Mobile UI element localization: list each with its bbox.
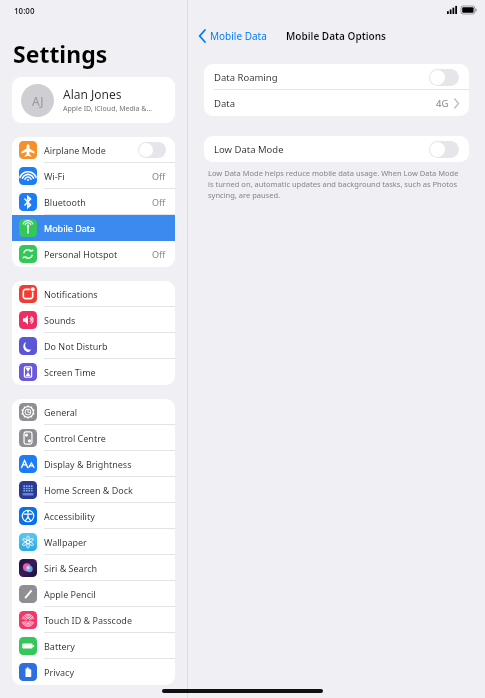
staticText: Notifications bbox=[44, 288, 98, 300]
button[interactable]: Data Roaming bbox=[204, 64, 469, 90]
staticText: Battery bbox=[44, 640, 75, 652]
staticText: General bbox=[44, 406, 78, 418]
staticText: Wi-Fi bbox=[44, 170, 65, 182]
button[interactable]: Notifications bbox=[12, 281, 175, 307]
staticText: Off bbox=[152, 248, 166, 260]
staticText: Alan Jones bbox=[63, 86, 122, 102]
staticText: Display & Brightness bbox=[44, 458, 132, 470]
staticText: Sounds bbox=[44, 314, 76, 326]
button[interactable]: Sounds bbox=[12, 307, 175, 333]
staticText: Low Data Mode bbox=[214, 143, 284, 156]
button[interactable]: Control Centre bbox=[12, 425, 175, 451]
staticText: Bluetooth bbox=[44, 196, 86, 208]
button[interactable]: Wallpaper bbox=[12, 529, 175, 555]
staticText: 4G bbox=[436, 97, 449, 110]
button[interactable]: Bluetooth bbox=[12, 189, 175, 215]
button[interactable]: Home Screen & Dock bbox=[12, 477, 175, 503]
staticText: Data bbox=[214, 97, 236, 110]
staticText: Low Data Mode helps reduce mobile data u… bbox=[208, 168, 465, 200]
staticText: Apple Pencil bbox=[44, 588, 96, 600]
button[interactable]: Airplane Mode bbox=[12, 137, 175, 163]
staticText: Wallpaper bbox=[44, 536, 87, 548]
button[interactable]: Screen Time bbox=[12, 359, 175, 385]
staticText: Data Roaming bbox=[214, 71, 278, 84]
staticText: Apple ID, iCloud, Media &… bbox=[63, 104, 152, 114]
button[interactable]: Wi-Fi bbox=[12, 163, 175, 189]
button[interactable]: Mobile Data bbox=[199, 29, 267, 43]
staticText: Accessibility bbox=[44, 510, 95, 522]
staticText: Home Screen & Dock bbox=[44, 484, 133, 496]
button[interactable]: Accessibility bbox=[12, 503, 175, 529]
staticText: Control Centre bbox=[44, 432, 106, 444]
button[interactable]: Toggle off bbox=[138, 142, 166, 158]
staticText: Screen Time bbox=[44, 366, 96, 378]
button[interactable]: General bbox=[12, 399, 175, 425]
staticText: Off bbox=[152, 170, 166, 182]
button[interactable]: Siri & Search bbox=[12, 555, 175, 581]
staticText: Privacy bbox=[44, 666, 75, 678]
staticText: AJ bbox=[32, 93, 44, 109]
staticText: Airplane Mode bbox=[44, 144, 106, 156]
staticText: Off bbox=[152, 196, 166, 208]
staticText: Mobile Data Options bbox=[286, 29, 387, 43]
button[interactable]: AJ bbox=[12, 77, 175, 123]
button[interactable]: Privacy bbox=[12, 659, 175, 685]
button[interactable]: Toggle off bbox=[429, 69, 459, 86]
button[interactable]: Touch ID & Passcode bbox=[12, 607, 175, 633]
staticText: Personal Hotspot bbox=[44, 248, 118, 260]
button[interactable]: Low Data Mode bbox=[204, 136, 469, 162]
button[interactable]: Data bbox=[204, 90, 469, 116]
staticText: Siri & Search bbox=[44, 562, 98, 574]
button[interactable]: Mobile Data bbox=[12, 215, 175, 241]
staticText: Mobile Data bbox=[44, 222, 96, 234]
button[interactable]: Toggle off bbox=[429, 141, 459, 158]
button[interactable]: Display & Brightness bbox=[12, 451, 175, 477]
staticText: Do Not Disturb bbox=[44, 340, 108, 352]
staticText: Settings bbox=[13, 38, 108, 69]
staticText: Mobile Data bbox=[210, 29, 267, 43]
staticText: Touch ID & Passcode bbox=[44, 614, 132, 626]
button[interactable]: Apple Pencil bbox=[12, 581, 175, 607]
button[interactable]: Do Not Disturb bbox=[12, 333, 175, 359]
button[interactable]: Battery bbox=[12, 633, 175, 659]
button[interactable]: Personal Hotspot bbox=[12, 241, 175, 267]
staticText: 10:00 bbox=[14, 5, 35, 16]
